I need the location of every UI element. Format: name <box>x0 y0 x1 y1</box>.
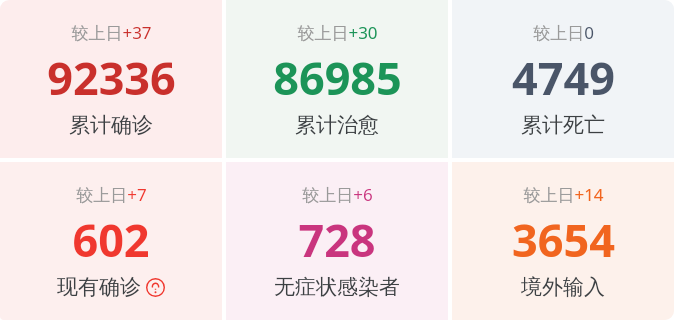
staticText: 较上日+14 <box>523 183 604 206</box>
staticText: 较上日+7 <box>76 183 147 206</box>
button[interactable]: 较上日+14 <box>452 162 674 320</box>
staticText: 86985 <box>273 47 402 108</box>
staticText: 累计死亡 <box>521 112 605 138</box>
button[interactable]: 较上日0 <box>452 0 674 158</box>
staticText: 92336 <box>47 47 176 108</box>
staticText: 累计确诊 <box>69 112 153 138</box>
staticText: 602 <box>72 209 150 270</box>
button[interactable]: 较上日+37 <box>0 0 222 158</box>
staticText: 较上日0 <box>533 21 594 44</box>
button[interactable]: 较上日+30 <box>226 0 448 158</box>
staticText: 现有确诊 <box>57 274 141 300</box>
staticText: 累计治愈 <box>295 112 379 138</box>
staticText: 3654 <box>512 209 615 270</box>
button[interactable]: 较上日+6 <box>226 162 448 320</box>
staticText: 较上日+6 <box>302 183 373 206</box>
staticText: 较上日+37 <box>71 21 152 44</box>
staticText: 728 <box>298 209 376 270</box>
staticText: 境外输入 <box>521 274 605 300</box>
button[interactable]: 说明 <box>146 278 165 297</box>
button[interactable]: 较上日+7 <box>0 162 222 320</box>
staticText: 无症状感染者 <box>274 274 400 300</box>
staticText: 4749 <box>512 47 615 108</box>
staticText: 较上日+30 <box>297 21 378 44</box>
